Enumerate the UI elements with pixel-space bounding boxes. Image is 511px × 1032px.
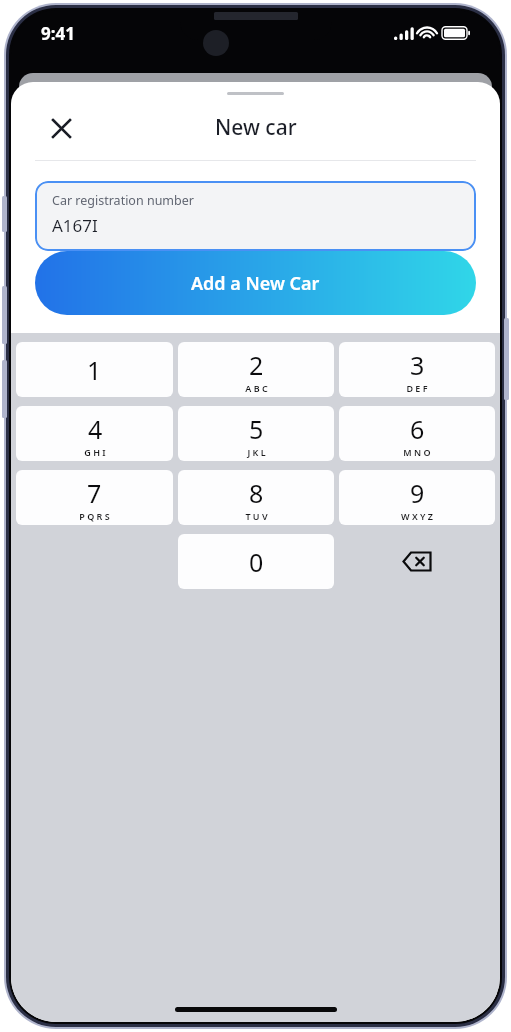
button[interactable]: 6 (339, 406, 495, 461)
staticText: 2 (249, 348, 264, 382)
staticText: 8 (249, 476, 264, 510)
staticText: J K L (247, 446, 266, 458)
staticText: 7 (87, 476, 102, 510)
staticText: T U V (245, 510, 268, 522)
staticText: 9 (410, 476, 425, 510)
button[interactable]: 9 (339, 470, 495, 525)
button[interactable]: 4 (16, 406, 173, 461)
staticText: 9:41 (41, 22, 75, 45)
staticText: 5 (249, 412, 264, 446)
button[interactable]: 1 (16, 342, 173, 397)
staticText: G H I (84, 446, 106, 458)
button[interactable]: 3 (339, 342, 495, 397)
button[interactable]: Add a New Car (35, 251, 476, 315)
staticText: 6 (410, 412, 425, 446)
staticText: D E F (406, 382, 428, 394)
staticText: 1 (87, 353, 102, 387)
staticText: New car (215, 113, 297, 142)
staticText: 4 (88, 412, 103, 446)
staticText: W X Y Z (401, 510, 433, 522)
staticText: 3 (410, 348, 425, 382)
staticText: M N O (403, 446, 431, 458)
staticText: A B C (245, 382, 268, 394)
staticText: Add a New Car (191, 271, 320, 296)
button[interactable]: 7 (16, 470, 173, 525)
button[interactable]: 2 (178, 342, 334, 397)
button[interactable]: Delete (339, 534, 495, 589)
staticText: P Q R S (79, 510, 110, 522)
staticText: 0 (249, 545, 264, 579)
staticText: Car registration number (52, 192, 194, 209)
button[interactable]: 0 (178, 534, 334, 589)
button[interactable]: 5 (178, 406, 334, 461)
button[interactable]: 8 (178, 470, 334, 525)
button[interactable]: Car registration number (35, 181, 476, 251)
staticText: A167I (52, 214, 98, 237)
button[interactable]: Close (41, 108, 81, 148)
